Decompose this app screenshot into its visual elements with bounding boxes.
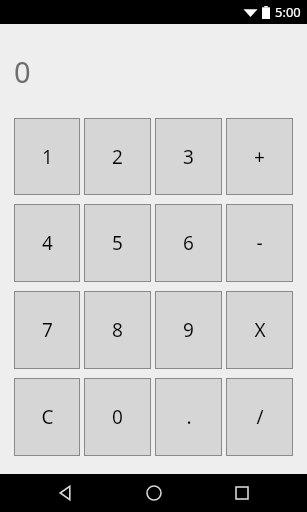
button[interactable]: Home bbox=[130, 474, 178, 512]
staticText: / bbox=[256, 404, 264, 430]
button[interactable]: Back bbox=[41, 474, 89, 512]
button[interactable]: 6 bbox=[155, 204, 222, 282]
staticText: 5 bbox=[112, 230, 123, 256]
button[interactable]: 1 bbox=[14, 118, 80, 195]
staticText: 6 bbox=[183, 230, 194, 256]
button[interactable]: Recent apps bbox=[218, 474, 266, 512]
button[interactable]: C bbox=[14, 378, 80, 456]
staticText: + bbox=[254, 144, 265, 170]
staticText: C bbox=[41, 404, 54, 430]
button[interactable]: 7 bbox=[14, 291, 80, 369]
staticText: 5:00 bbox=[275, 3, 301, 21]
button[interactable]: 8 bbox=[84, 291, 151, 369]
staticText: 0 bbox=[14, 52, 31, 91]
staticText: 0 bbox=[112, 404, 123, 430]
button[interactable]: . bbox=[155, 378, 222, 456]
staticText: 8 bbox=[112, 317, 123, 343]
button[interactable]: 4 bbox=[14, 204, 80, 282]
staticText: 9 bbox=[183, 317, 194, 343]
button[interactable]: + bbox=[226, 118, 293, 195]
staticText: 3 bbox=[183, 144, 194, 170]
button[interactable]: 5 bbox=[84, 204, 151, 282]
staticText: 1 bbox=[42, 144, 53, 170]
button[interactable]: X bbox=[226, 291, 293, 369]
button[interactable]: / bbox=[226, 378, 293, 456]
staticText: . bbox=[186, 404, 192, 430]
staticText: - bbox=[256, 230, 263, 256]
button[interactable]: 9 bbox=[155, 291, 222, 369]
staticText: X bbox=[254, 317, 266, 343]
staticText: 2 bbox=[112, 144, 123, 170]
staticText: 4 bbox=[42, 230, 53, 256]
staticText: 7 bbox=[42, 317, 53, 343]
button[interactable]: 2 bbox=[84, 118, 151, 195]
button[interactable]: 0 bbox=[84, 378, 151, 456]
button[interactable]: - bbox=[226, 204, 293, 282]
button[interactable]: 3 bbox=[155, 118, 222, 195]
